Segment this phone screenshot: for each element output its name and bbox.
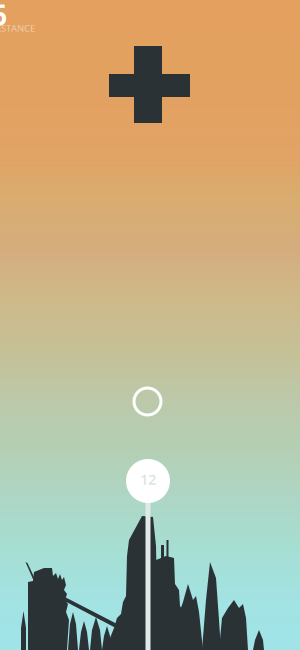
- staticText: 6: [0, 0, 7, 33]
- staticText: DISTANCE: [0, 22, 35, 34]
- staticText: 12: [140, 469, 156, 489]
- button[interactable]: Tap to jump: [0, 0, 300, 650]
